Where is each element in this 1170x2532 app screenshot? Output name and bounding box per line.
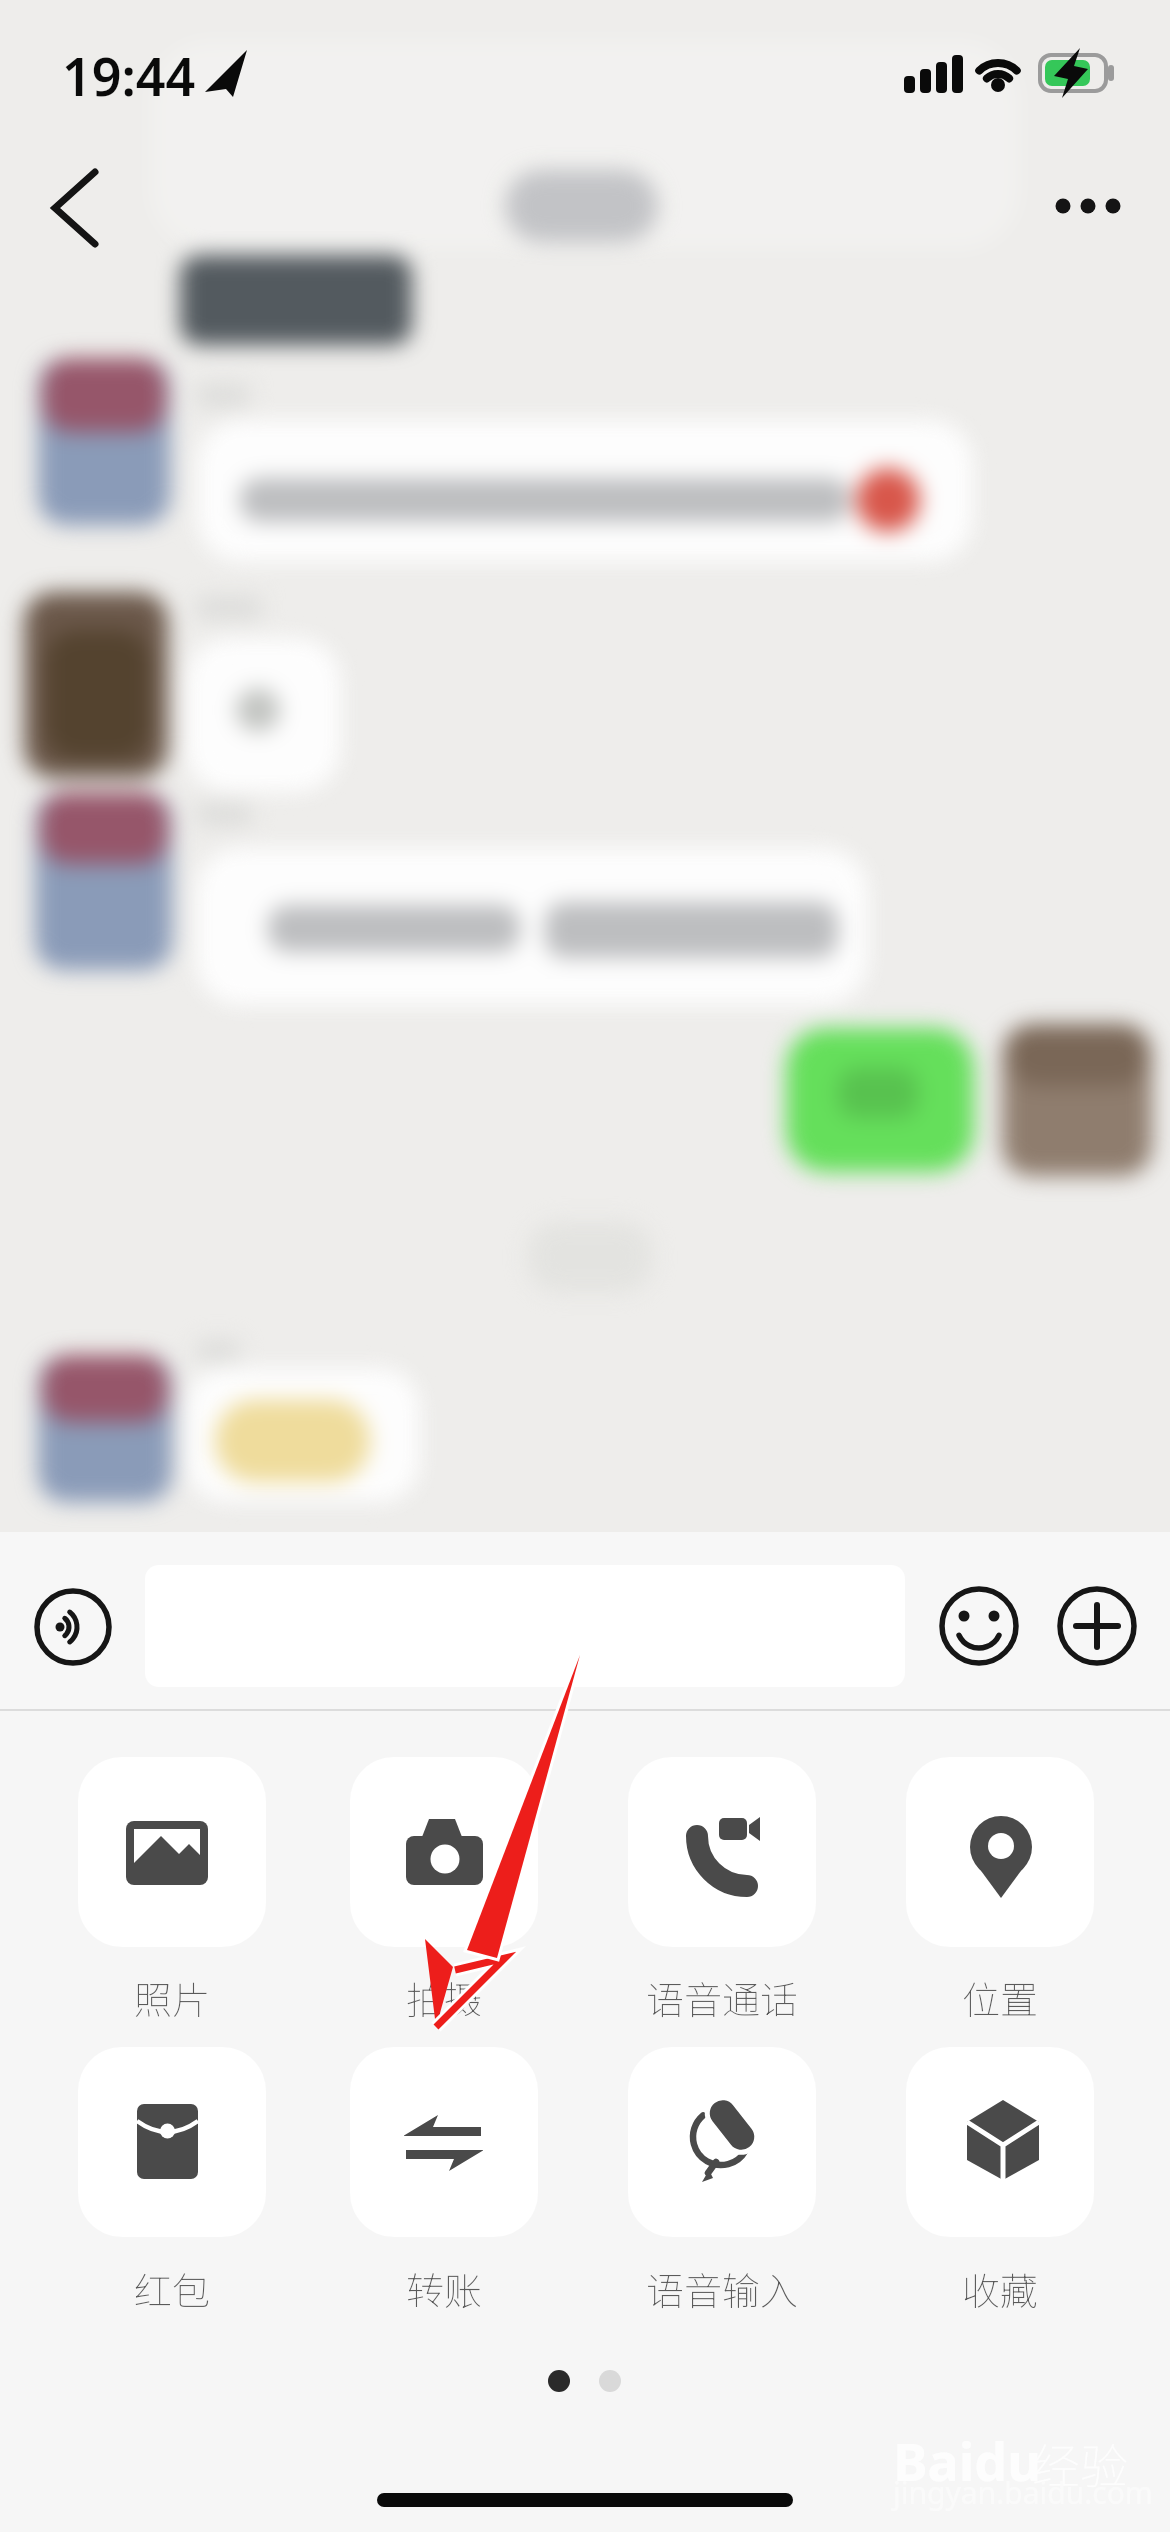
button[interactable] — [1040, 170, 1140, 240]
staticText: 红包 — [134, 2261, 211, 2316]
button[interactable] — [939, 1586, 1019, 1666]
button[interactable] — [350, 1757, 538, 1947]
button[interactable] — [628, 1757, 816, 1947]
button[interactable] — [1057, 1586, 1137, 1666]
button[interactable] — [78, 1757, 266, 1947]
button[interactable] — [34, 1588, 112, 1666]
staticText: 语音通话 — [646, 1970, 799, 2025]
staticText: 拍摄 — [406, 1970, 483, 2025]
button[interactable] — [628, 2047, 816, 2237]
staticText: 位置 — [962, 1970, 1039, 2025]
button[interactable] — [78, 2047, 266, 2237]
staticText: 转账 — [406, 2261, 483, 2316]
button[interactable] — [906, 2047, 1094, 2237]
button[interactable] — [30, 160, 120, 250]
staticText: 照片 — [134, 1970, 211, 2025]
button[interactable] — [906, 1757, 1094, 1947]
staticText: 19:44 — [62, 40, 196, 111]
staticText: 收藏 — [962, 2261, 1039, 2316]
button[interactable] — [350, 2047, 538, 2237]
button[interactable] — [145, 1565, 905, 1687]
staticText: 语音输入 — [646, 2261, 799, 2316]
